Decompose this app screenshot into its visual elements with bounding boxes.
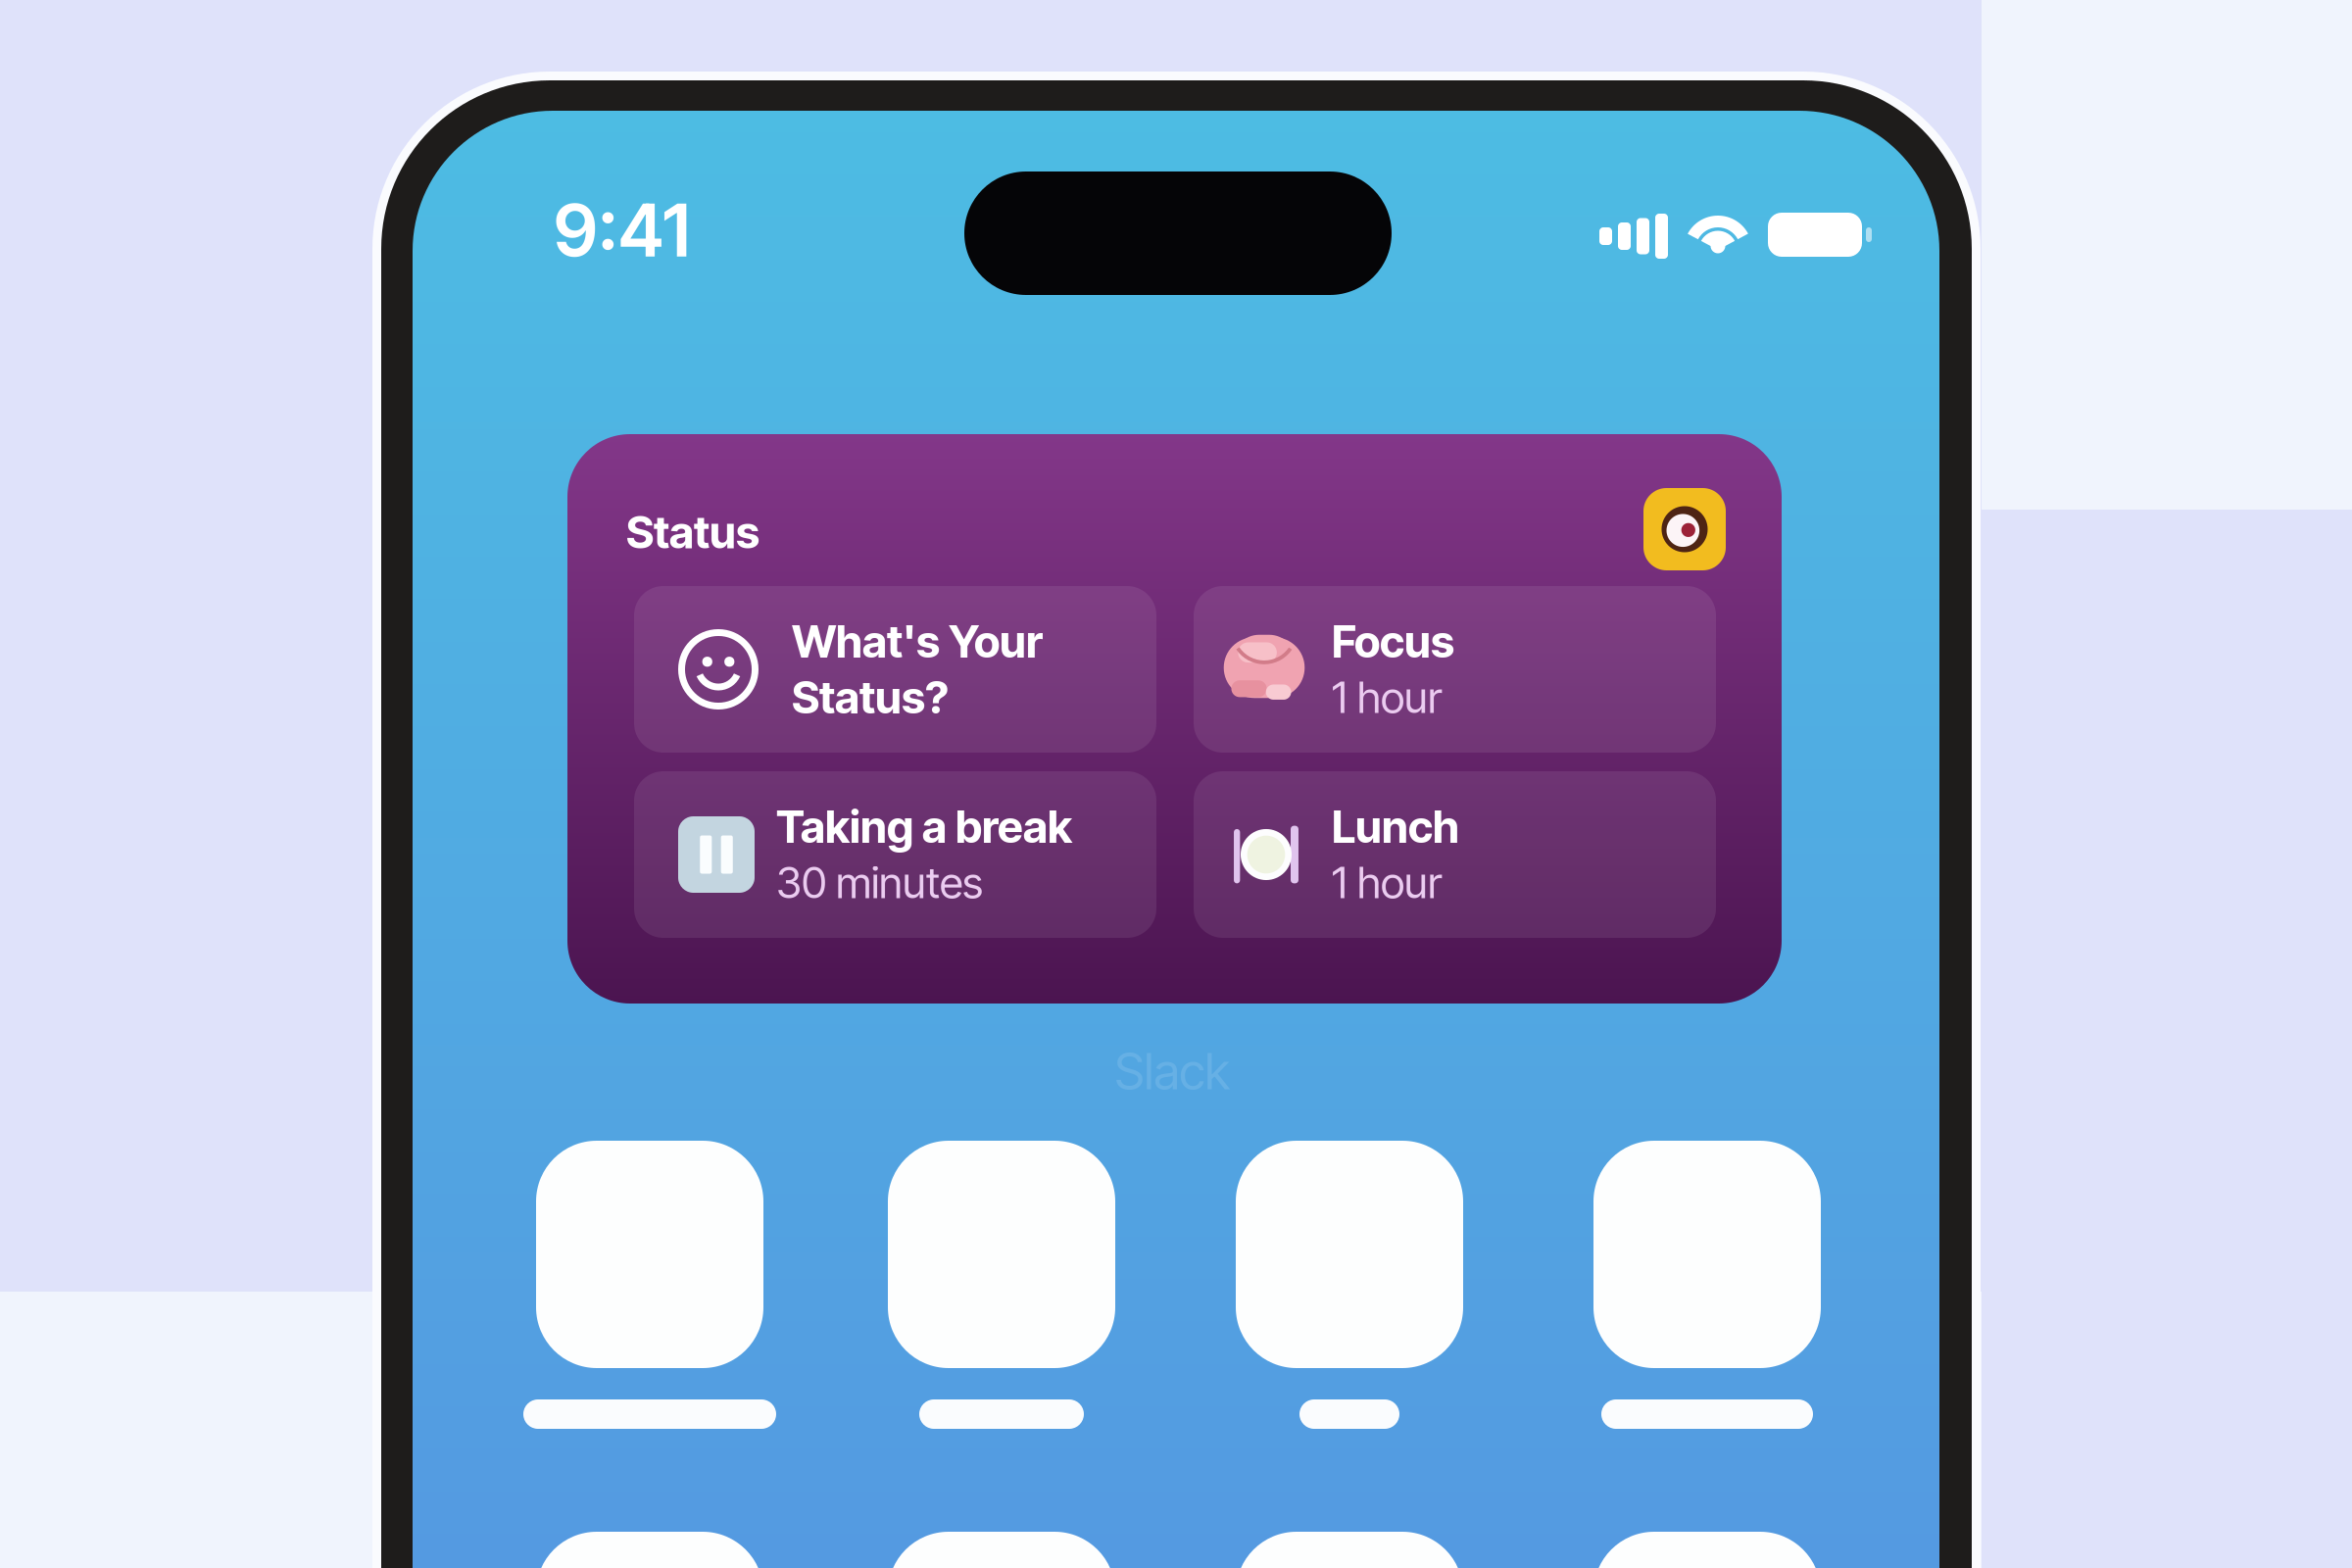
staticText: Slack	[1115, 1041, 1229, 1101]
staticText: Focus	[1332, 615, 1454, 668]
staticText: 9:41	[554, 187, 690, 274]
staticText: Status?	[792, 670, 949, 724]
button[interactable]: Focus	[1194, 586, 1716, 753]
button[interactable]: Lunch	[1194, 771, 1716, 938]
button[interactable]: App	[1570, 1532, 1844, 1568]
button[interactable]: App	[864, 1532, 1139, 1568]
button[interactable]: App	[864, 1141, 1139, 1435]
staticText: 30 minutes	[776, 856, 983, 909]
staticText: Taking a break	[776, 800, 1072, 854]
staticText: Lunch	[1332, 800, 1459, 854]
button[interactable]: App	[513, 1141, 787, 1435]
button[interactable]: App	[513, 1532, 787, 1568]
staticText: 1 hour	[1332, 856, 1442, 909]
button[interactable]: App	[1212, 1141, 1487, 1435]
staticText: 1 hour	[1332, 671, 1442, 723]
button[interactable]: What's Your	[634, 586, 1156, 753]
staticText: What's Your	[792, 615, 1043, 668]
button[interactable]: App	[1570, 1141, 1844, 1435]
button[interactable]: Taking a break	[634, 771, 1156, 938]
button[interactable]: App	[1212, 1532, 1487, 1568]
button[interactable]: Slack	[1643, 488, 1726, 570]
staticText: Status	[626, 505, 759, 559]
